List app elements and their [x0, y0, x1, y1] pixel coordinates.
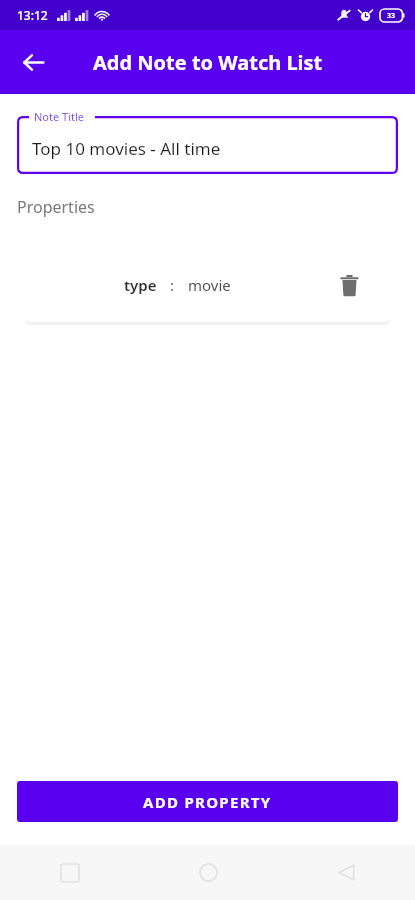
staticText: movie [188, 275, 231, 295]
button[interactable]: Navigate up [11, 40, 55, 84]
staticText: Properties [17, 196, 95, 218]
button[interactable]: Delete property [329, 265, 369, 305]
staticText: : [170, 275, 175, 295]
staticText: 33 [387, 11, 396, 21]
staticText: type [124, 275, 157, 295]
staticText: ADD PROPERTY [143, 792, 272, 812]
staticText: Top 10 movies - All time [32, 137, 221, 160]
staticText: Add Note to Watch List [93, 49, 323, 76]
button[interactable]: ADD PROPERTY [17, 781, 398, 822]
staticText: 13:12 [17, 7, 48, 23]
staticText: Note Title [34, 109, 85, 124]
button[interactable]: type [25, 247, 390, 322]
